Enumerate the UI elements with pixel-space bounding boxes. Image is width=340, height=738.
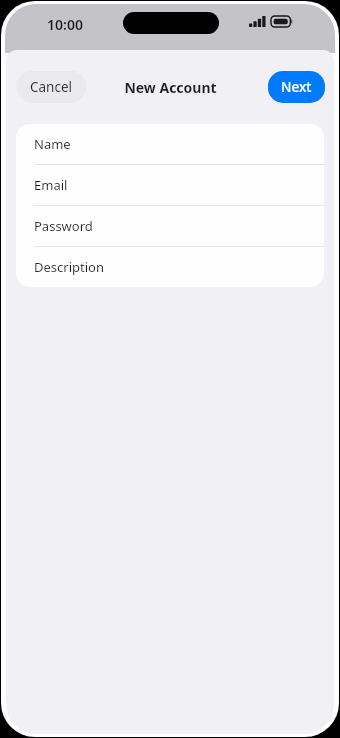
button[interactable]: Name: [16, 124, 324, 165]
button[interactable]: Next: [268, 71, 325, 103]
button[interactable]: Password: [16, 206, 324, 247]
staticText: Password: [34, 217, 93, 235]
staticText: Next: [281, 78, 312, 96]
button[interactable]: Cancel: [17, 71, 86, 103]
button[interactable]: Email: [16, 165, 324, 206]
staticText: Email: [34, 176, 68, 194]
staticText: Name: [34, 135, 71, 153]
staticText: Cancel: [30, 78, 73, 96]
staticText: 10:00: [47, 15, 83, 34]
button[interactable]: Description: [16, 247, 324, 287]
staticText: Description: [34, 258, 104, 276]
staticText: New Account: [124, 78, 217, 97]
